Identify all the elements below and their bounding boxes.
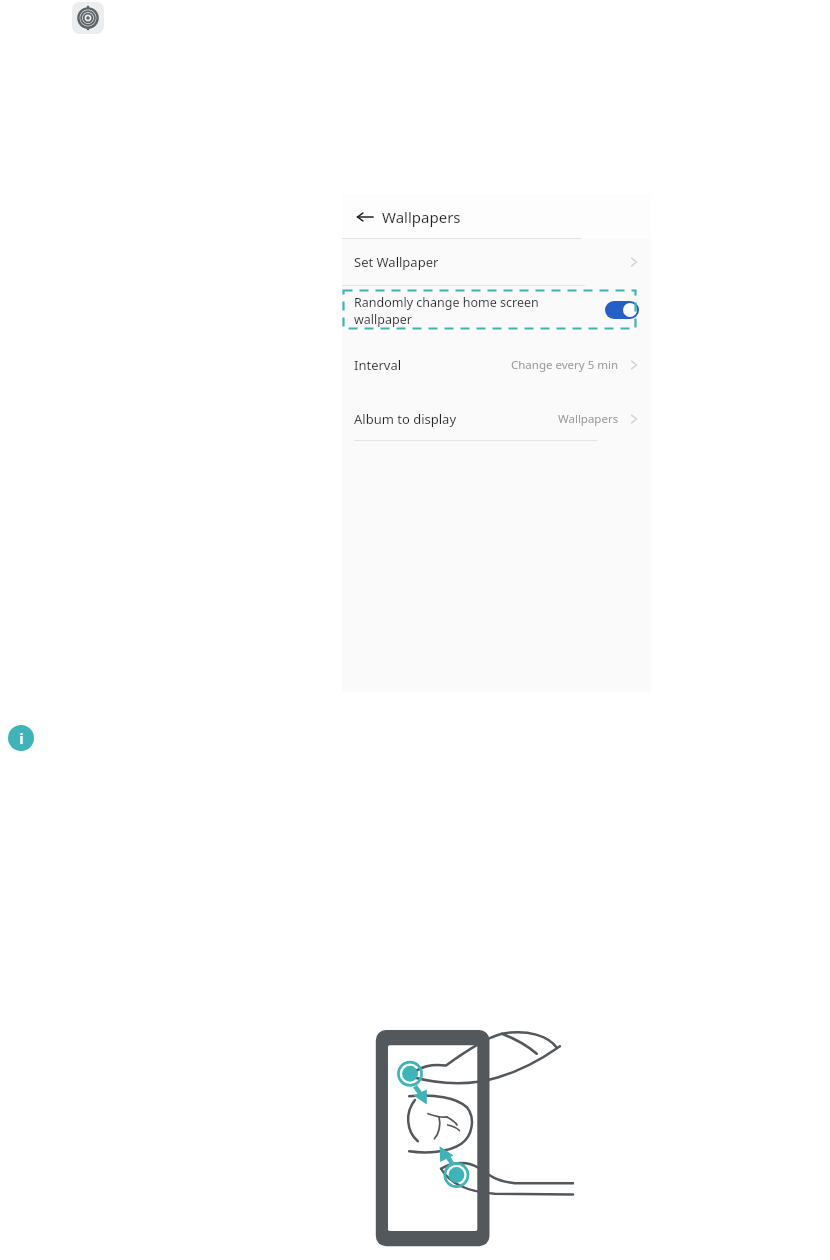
- staticText: Randomly change home screen wallpaper: [354, 294, 605, 327]
- staticText: Change every 5 min: [511, 357, 619, 373]
- button[interactable]: Randomly change wallpaper toggle: [605, 301, 639, 319]
- button[interactable]: Information: [8, 725, 34, 751]
- button[interactable]: Interval: [342, 348, 651, 382]
- button[interactable]: Settings: [72, 2, 104, 34]
- staticText: i: [19, 728, 24, 748]
- staticText: Wallpapers: [558, 411, 619, 427]
- button[interactable]: Back: [352, 204, 378, 230]
- staticText: Interval: [354, 356, 402, 374]
- staticText: Album to display: [354, 410, 457, 428]
- staticText: Set Wallpaper: [354, 253, 439, 271]
- button[interactable]: Randomly change home screen wallpaper: [342, 286, 651, 334]
- button[interactable]: Album to display: [342, 402, 651, 436]
- button[interactable]: Set Wallpaper: [342, 239, 651, 285]
- staticText: Wallpapers: [382, 207, 461, 227]
